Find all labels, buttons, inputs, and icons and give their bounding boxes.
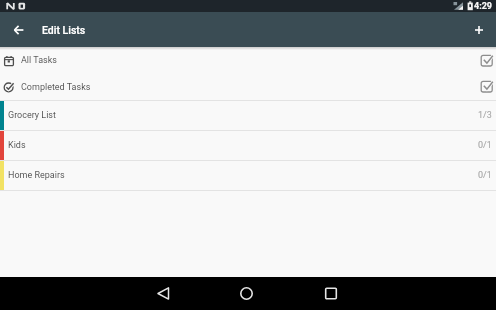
button[interactable] [166,277,331,310]
staticText: 0/1 [478,140,492,151]
staticText: 1/3 [478,110,492,121]
button[interactable]: Completed Tasks [0,74,496,100]
button[interactable] [331,277,496,310]
button[interactable] [0,277,166,310]
staticText: Edit Lists [42,24,86,36]
button[interactable]: Kids [0,131,496,160]
staticText: Home Repairs [8,170,65,181]
staticText: 4:29 [474,1,493,12]
staticText: Grocery List [8,110,56,121]
staticText: Completed Tasks [21,82,91,93]
button[interactable] [469,20,489,40]
button[interactable]: Home Repairs [0,161,496,190]
button[interactable]: All Tasks [0,47,496,74]
button[interactable]: Grocery List [0,101,496,130]
staticText: Kids [8,140,26,151]
staticText: All Tasks [21,55,57,66]
staticText: 0/1 [478,170,492,181]
button[interactable] [10,21,28,39]
